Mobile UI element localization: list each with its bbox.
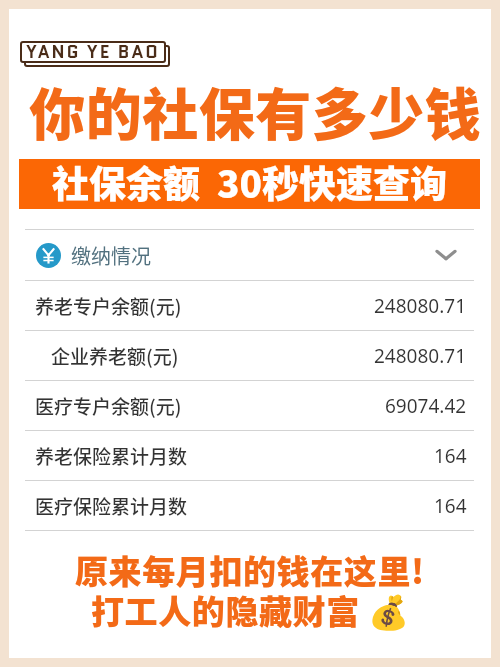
button[interactable]: Payments	[25, 230, 474, 280]
staticText: 164	[434, 443, 467, 469]
staticText: 你的社保有多少钱	[29, 70, 481, 151]
staticText: 医疗保险累计月数	[35, 492, 188, 520]
staticText: YANG YE BAO	[26, 39, 160, 61]
staticText: 248080.71	[374, 343, 467, 369]
staticText: 164	[434, 493, 467, 519]
staticText: 248080.71	[374, 293, 467, 319]
staticText: 社保余额 30秒快速查询	[52, 155, 448, 205]
button[interactable]: 企业养老额(元)	[25, 331, 474, 380]
button[interactable]: Collapse	[433, 242, 459, 268]
staticText: 打工人的隐藏财富 💰	[91, 586, 410, 634]
button[interactable]: 医疗保险累计月数	[25, 481, 474, 530]
staticText: 医疗专户余额(元)	[35, 392, 182, 420]
staticText: 企业养老额(元)	[51, 342, 179, 370]
button[interactable]: 养老保险累计月数	[25, 431, 474, 480]
other: Payments	[36, 243, 61, 268]
staticText: 原来每月扣的钱在这里!	[75, 546, 425, 594]
button[interactable]: YANG YE BAO	[20, 41, 166, 63]
button[interactable]: 医疗专户余额(元)	[25, 381, 474, 430]
staticText: 养老专户余额(元)	[35, 292, 182, 320]
staticText: 养老保险累计月数	[35, 442, 188, 470]
button[interactable]: 养老专户余额(元)	[25, 281, 474, 330]
staticText: 69074.42	[385, 393, 467, 419]
staticText: 缴纳情况	[71, 241, 151, 270]
